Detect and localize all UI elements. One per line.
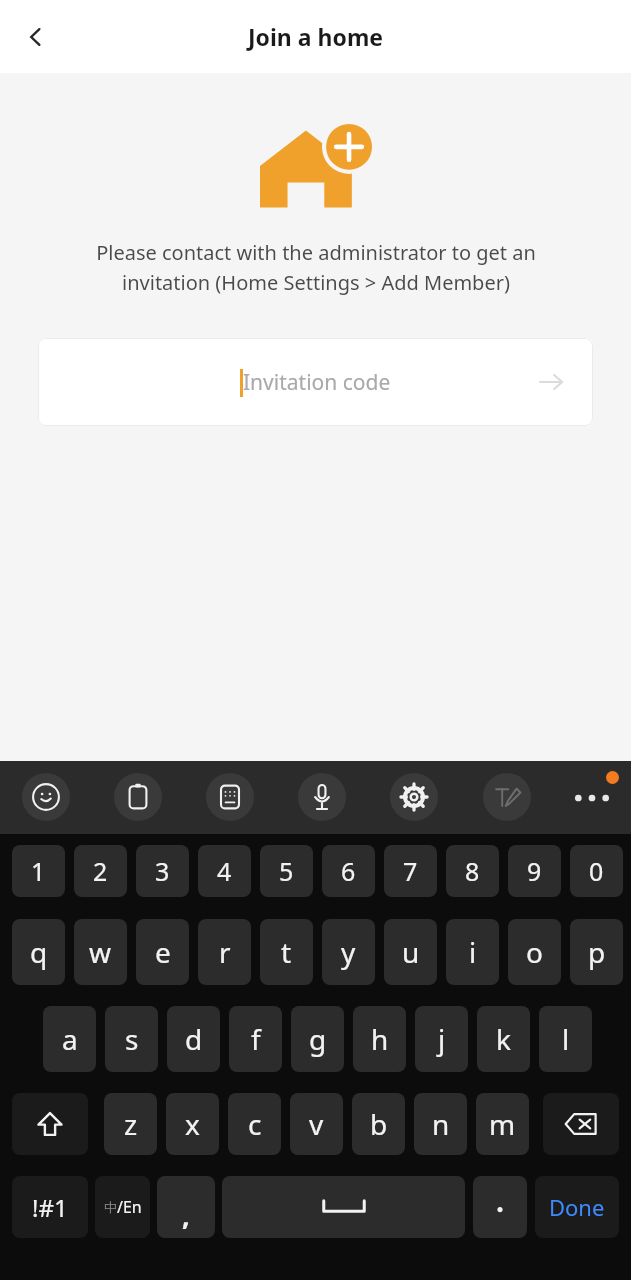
button[interactable]: Backspace [543, 1093, 619, 1155]
button[interactable]: i [446, 919, 499, 985]
button[interactable]: , [157, 1176, 215, 1238]
button[interactable]: Clipboard [114, 773, 162, 821]
button[interactable]: Emoji [22, 773, 70, 821]
staticText: q [30, 933, 48, 971]
staticText: c [248, 1105, 262, 1143]
button[interactable]: l [539, 1006, 592, 1072]
staticText: 0 [589, 854, 604, 888]
staticText: 5 [279, 854, 294, 888]
button[interactable]: 中 [95, 1176, 150, 1238]
button[interactable]: x [166, 1093, 219, 1155]
button[interactable]: t [260, 919, 313, 985]
staticText: w [89, 933, 112, 971]
button[interactable]: d [167, 1006, 220, 1072]
staticText: 7 [403, 854, 418, 888]
button[interactable]: j [415, 1006, 468, 1072]
button[interactable]: 5 [260, 845, 313, 897]
button[interactable]: 3 [136, 845, 189, 897]
button[interactable]: Done [535, 1176, 619, 1238]
staticText: x [185, 1105, 200, 1143]
staticText: t [281, 933, 292, 971]
staticText: 中 [104, 1199, 117, 1215]
staticText: m [489, 1105, 516, 1143]
button[interactable]: g [291, 1006, 344, 1072]
staticText: r [219, 933, 231, 971]
button[interactable]: m [476, 1093, 529, 1155]
button[interactable]: a [43, 1006, 96, 1072]
button[interactable]: Voice input [298, 773, 346, 821]
staticText: k [496, 1020, 511, 1058]
staticText: , [182, 1197, 190, 1234]
button[interactable]: 6 [322, 845, 375, 897]
button[interactable]: f [229, 1006, 282, 1072]
staticText: j [438, 1020, 446, 1058]
button[interactable]: More options [568, 761, 616, 834]
button[interactable]: s [105, 1006, 158, 1072]
staticText: 4 [217, 854, 232, 888]
staticText: z [124, 1105, 138, 1143]
button[interactable]: 9 [508, 845, 561, 897]
button[interactable]: 4 [198, 845, 251, 897]
button[interactable]: 2 [74, 845, 127, 897]
button[interactable]: y [322, 919, 375, 985]
staticText: Invitation code [243, 368, 391, 397]
button[interactable]: 1 [12, 845, 65, 897]
button[interactable]: h [353, 1006, 406, 1072]
button[interactable]: Space [222, 1176, 465, 1238]
staticText: a [62, 1020, 78, 1058]
button[interactable]: Submit invitation code [533, 364, 569, 400]
button[interactable]: p [570, 919, 623, 985]
button[interactable]: 7 [384, 845, 437, 897]
button[interactable]: 0 [570, 845, 623, 897]
staticText: Please contact with the administrator to… [96, 239, 536, 296]
staticText: f [251, 1020, 261, 1058]
button[interactable]: o [508, 919, 561, 985]
staticText: e [155, 933, 171, 971]
button[interactable]: Handwriting [483, 773, 531, 821]
staticText: p [588, 933, 606, 971]
button[interactable]: !#1 [12, 1176, 88, 1238]
staticText: l [562, 1020, 570, 1058]
button[interactable]: b [352, 1093, 405, 1155]
staticText: 6 [341, 854, 356, 888]
staticText: Done [549, 1192, 605, 1222]
staticText: y [341, 933, 356, 971]
staticText: 9 [527, 854, 542, 888]
button[interactable]: n [414, 1093, 467, 1155]
staticText: n [432, 1105, 450, 1143]
staticText: i [469, 933, 477, 971]
staticText: Join a home [248, 21, 384, 52]
button[interactable] [473, 1176, 527, 1238]
button[interactable]: e [136, 919, 189, 985]
staticText: h [371, 1020, 389, 1058]
staticText: v [309, 1105, 324, 1143]
button[interactable]: q [12, 919, 65, 985]
button[interactable]: z [104, 1093, 157, 1155]
button[interactable]: Back [0, 0, 72, 73]
button[interactable]: Invitation code [38, 338, 593, 426]
staticText: u [402, 933, 420, 971]
staticText: g [309, 1020, 327, 1058]
staticText: /En [117, 1196, 142, 1218]
button[interactable]: w [74, 919, 127, 985]
staticText: 1 [31, 854, 46, 888]
button[interactable]: k [477, 1006, 530, 1072]
staticText: b [370, 1105, 388, 1143]
staticText: s [125, 1020, 139, 1058]
button[interactable]: v [290, 1093, 343, 1155]
button[interactable]: r [198, 919, 251, 985]
button[interactable]: Shift [12, 1093, 88, 1155]
button[interactable]: 8 [446, 845, 499, 897]
staticText: d [185, 1020, 203, 1058]
staticText: 3 [155, 854, 170, 888]
button[interactable]: Keyboard layout [206, 773, 254, 821]
staticText: 8 [465, 854, 480, 888]
staticText: o [526, 933, 543, 971]
staticText: !#1 [32, 1191, 68, 1224]
staticText: 2 [93, 854, 108, 888]
button[interactable]: c [228, 1093, 281, 1155]
button[interactable]: Settings [390, 773, 438, 821]
button[interactable]: u [384, 919, 437, 985]
